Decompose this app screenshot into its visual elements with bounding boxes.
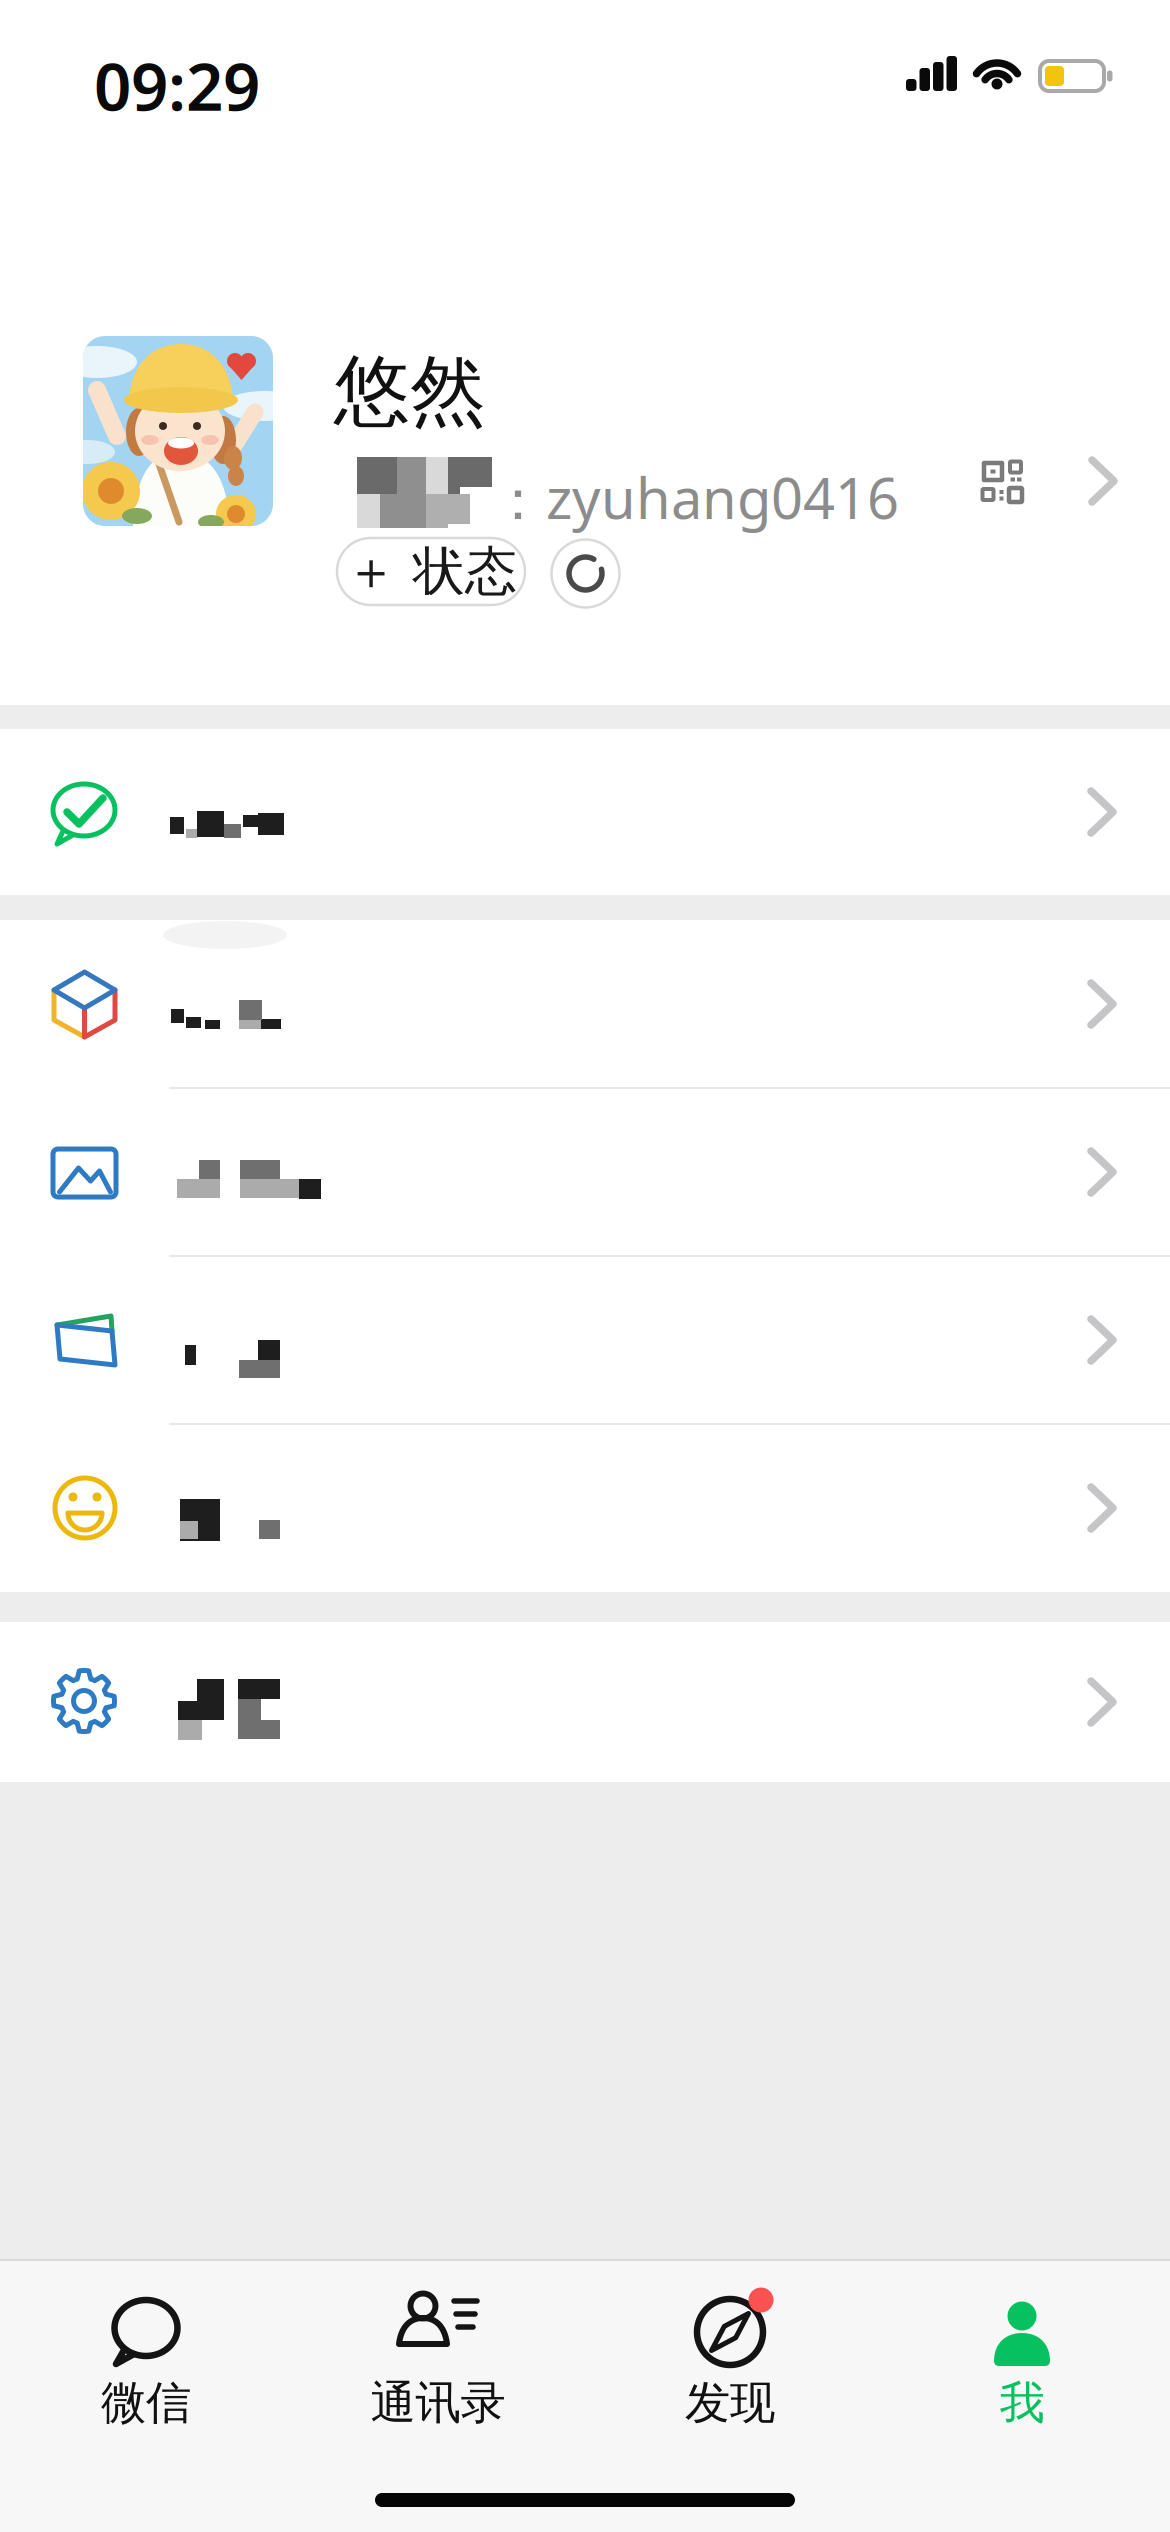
button[interactable]: 表情 bbox=[0, 1424, 1170, 1592]
button[interactable]: 悠然 bbox=[0, 330, 1170, 530]
button[interactable]: 服务 bbox=[0, 729, 1170, 895]
staticText: ＋ 状态 bbox=[345, 540, 517, 603]
staticText: 悠然 bbox=[334, 345, 486, 438]
button[interactable]: My QR code bbox=[957, 436, 1047, 526]
button[interactable]: 设置 bbox=[0, 1622, 1170, 1782]
button[interactable]: 收藏 bbox=[0, 920, 1170, 1088]
button[interactable]: ＋ 状态 bbox=[337, 538, 525, 605]
staticText: ：zyuhang0416 bbox=[490, 460, 899, 535]
staticText: 我 bbox=[999, 2375, 1044, 2431]
staticText: 通讯录 bbox=[370, 2375, 505, 2431]
staticText: 发现 bbox=[685, 2375, 775, 2431]
button[interactable]: 我 bbox=[876, 2261, 1168, 2471]
button[interactable]: 发现 bbox=[584, 2261, 876, 2471]
button[interactable]: 微信 bbox=[0, 2261, 292, 2471]
button[interactable]: 通讯录 bbox=[292, 2261, 584, 2471]
button[interactable]: 朋友圈 bbox=[0, 1088, 1170, 1256]
button[interactable]: 卡包 bbox=[0, 1256, 1170, 1424]
staticText: 09:29 bbox=[94, 42, 260, 129]
staticText: 微信 bbox=[101, 2375, 191, 2431]
button[interactable]: Status bbox=[550, 538, 621, 609]
